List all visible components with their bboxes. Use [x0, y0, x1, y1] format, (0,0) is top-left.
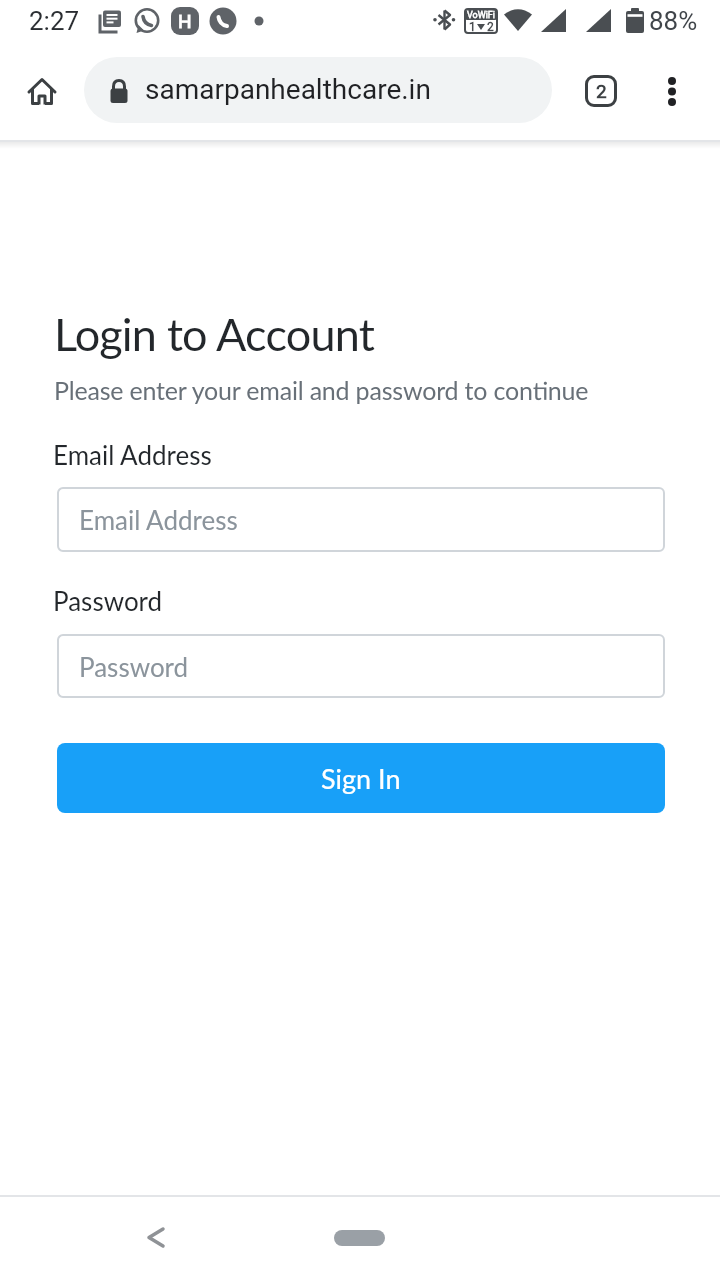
button[interactable]: 2	[585, 75, 617, 107]
staticText: Email Address	[53, 439, 212, 470]
staticText: VoWiFi	[467, 10, 495, 21]
staticText: Password	[79, 651, 189, 682]
button[interactable]: Password	[57, 634, 665, 698]
staticText: Please enter your email and password to …	[54, 375, 589, 405]
button[interactable]	[334, 1230, 385, 1246]
staticText: Sign In	[321, 762, 401, 794]
button[interactable]: Sign In	[57, 743, 665, 813]
staticText: H	[178, 10, 192, 32]
button[interactable]	[84, 57, 552, 123]
staticText: samarpanhealthcare.in	[145, 73, 431, 106]
button[interactable]: Email Address	[57, 487, 665, 552]
button[interactable]	[24, 74, 60, 110]
staticText: Login to Account	[54, 307, 374, 361]
staticText: 2	[487, 20, 494, 34]
staticText: Email Address	[79, 504, 238, 535]
staticText: 2	[596, 80, 607, 102]
button[interactable]	[142, 1223, 172, 1253]
staticText: Password	[53, 585, 163, 616]
staticText: 2:27	[29, 6, 80, 36]
button[interactable]	[664, 75, 680, 107]
staticText: 88%	[649, 6, 698, 36]
staticText: 1	[469, 20, 476, 34]
